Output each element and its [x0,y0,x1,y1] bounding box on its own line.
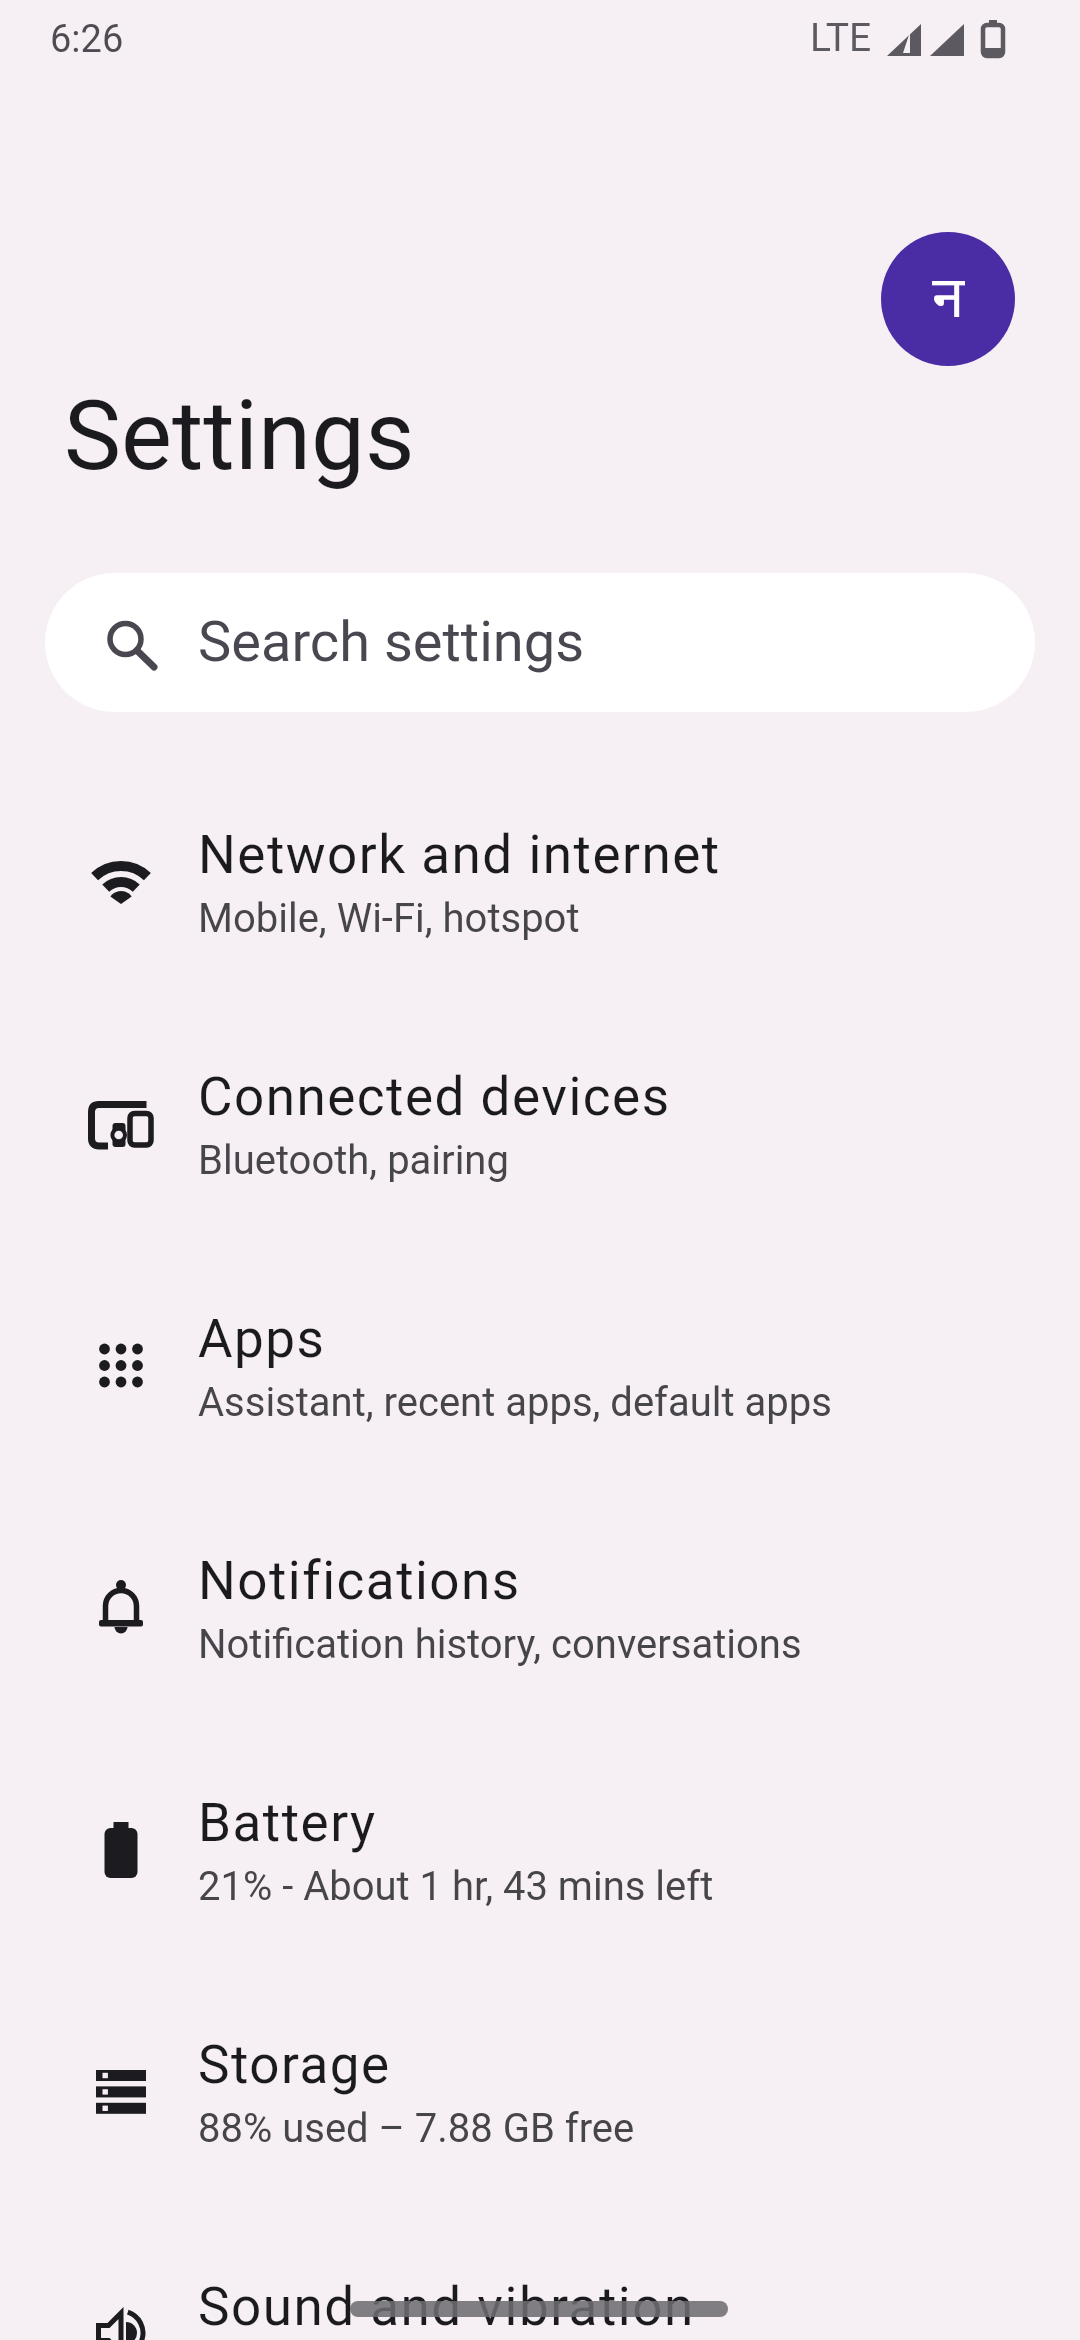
staticText: Bluetooth, pairing [198,1137,509,1184]
staticText: Search settings [198,609,585,675]
staticText: Sound and vibration [198,2276,695,2338]
staticText: LTE [810,15,872,61]
staticText: Settings [64,380,415,493]
staticText: Mobile, Wi-Fi, hotspot [198,895,580,942]
staticText: 88% used – 7.88 GB free [198,2105,635,2152]
button[interactable] [45,573,1035,712]
button[interactable] [0,1009,1080,1251]
staticText: Network and internet [198,824,721,886]
staticText: 21% - About 1 hr, 43 mins left [198,1863,714,1910]
staticText: न [932,255,965,334]
button[interactable] [0,1735,1080,1977]
button[interactable] [0,767,1080,1009]
button[interactable] [0,1493,1080,1735]
staticText: Notification history, conversations [198,1621,802,1668]
staticText: Notifications [198,1550,521,1612]
button[interactable] [0,2219,1080,2340]
staticText: Connected devices [198,1066,671,1128]
staticText: Apps [198,1308,326,1370]
button[interactable] [0,1977,1080,2219]
staticText: Battery [198,1792,377,1854]
button[interactable]: न [881,232,1015,366]
button[interactable] [0,1251,1080,1493]
staticText: Storage [198,2034,391,2096]
staticText: Assistant, recent apps, default apps [198,1379,832,1426]
staticText: 6:26 [50,17,124,62]
